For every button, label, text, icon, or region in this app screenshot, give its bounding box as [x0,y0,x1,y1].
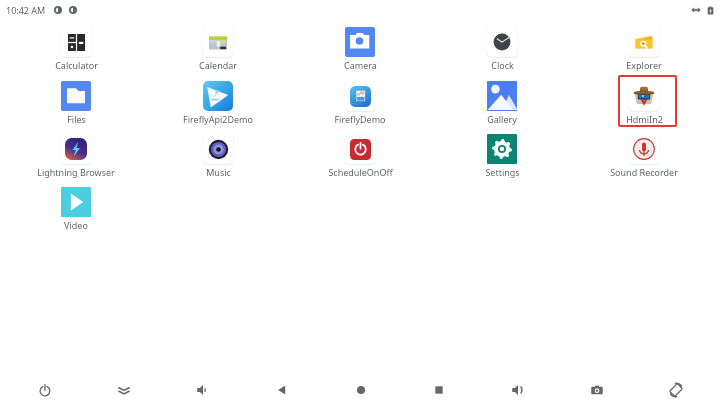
staticText: Sound Recorder [610,166,678,178]
button[interactable]: Rotate screen [650,371,702,407]
button[interactable]: FireflyApi2Demo [151,81,285,126]
staticText: Settings [485,166,520,178]
button[interactable]: Clock [435,27,569,72]
staticText: Files [67,113,86,125]
button[interactable]: FireflyDemo [293,81,427,126]
staticText: 10:42 AM [6,4,46,16]
staticText: Calendar [199,59,237,71]
button[interactable]: Screenshot [571,371,623,407]
button[interactable]: Video [9,187,143,232]
button[interactable]: Calculator [9,27,143,72]
button[interactable]: Calendar [151,27,285,72]
staticText: Lightning Browser [37,166,115,178]
staticText: Gallery [487,113,517,125]
staticText: Clock [491,59,514,71]
staticText: HdmiIn2 [626,113,663,125]
button[interactable]: Recent apps [413,371,465,407]
staticText: Video [64,219,88,231]
staticText: Explorer [626,59,662,71]
button[interactable]: Volume down [177,371,229,407]
button[interactable]: Expand quick settings [98,371,150,407]
button[interactable]: Explorer [577,27,711,72]
button[interactable]: Gallery [435,81,569,126]
button[interactable]: Camera [293,27,427,72]
staticText: Music [206,166,231,178]
button[interactable]: Sound Recorder [577,134,711,179]
button[interactable]: Power [19,371,71,407]
button[interactable]: Home [335,371,387,407]
staticText: FireflyApi2Demo [183,113,253,125]
button[interactable]: Settings [435,134,569,179]
button[interactable]: Files [9,81,143,126]
button[interactable]: Volume up [492,371,544,407]
button[interactable]: Back [256,371,308,407]
staticText: FireflyDemo [334,113,386,125]
button[interactable]: ScheduleOnOff [293,134,427,179]
button[interactable]: HdmiIn2 [577,81,711,126]
staticText: Camera [344,59,377,71]
button[interactable]: Music [151,134,285,179]
staticText: Calculator [55,59,98,71]
staticText: ScheduleOnOff [328,166,393,178]
button[interactable]: Lightning Browser [9,134,143,179]
